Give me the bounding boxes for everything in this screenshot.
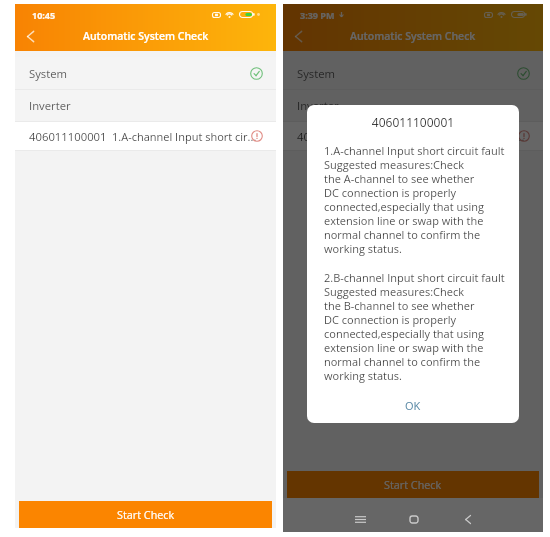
button[interactable]: Back — [283, 24, 314, 48]
staticText: Automatic System Check — [83, 29, 209, 43]
staticText: 406011100001 — [307, 114, 519, 130]
button[interactable]: 406011100001 — [15, 122, 276, 150]
staticText: 10:45 — [32, 9, 56, 21]
button[interactable]: Inverter — [283, 90, 543, 121]
staticText: 406011100001 — [297, 129, 375, 144]
button[interactable]: OK — [307, 387, 519, 423]
button[interactable]: Home — [401, 512, 427, 526]
button[interactable]: Start Check — [19, 501, 272, 528]
staticText: Start Check — [117, 507, 175, 522]
staticText: Start Check — [384, 477, 442, 492]
staticText: Inverter — [29, 98, 71, 113]
staticText: Automatic System Check — [350, 29, 476, 43]
staticText: OK — [405, 398, 421, 413]
staticText: 1.A-channel Input short circuit fault Su… — [324, 143, 505, 256]
staticText: 2.B-channel Input short circuit fault Su… — [324, 270, 505, 383]
staticText: 1.A-channel Input short cir... — [112, 129, 257, 144]
button[interactable]: Recent apps — [347, 512, 373, 526]
staticText: Inverter — [297, 98, 339, 113]
button[interactable]: System — [15, 57, 276, 89]
staticText: System — [297, 66, 336, 81]
button[interactable]: Back — [455, 512, 481, 526]
button[interactable]: System — [283, 57, 543, 89]
staticText: 3:39 PM — [300, 9, 335, 21]
staticText: 406011100001 — [29, 129, 107, 144]
staticText: System — [29, 66, 68, 81]
button[interactable]: 406011100001 — [283, 122, 543, 150]
staticText: 1.A-channel Input short cir... — [380, 129, 525, 144]
button[interactable]: Start Check — [287, 471, 539, 498]
button[interactable]: Inverter — [15, 90, 276, 121]
button[interactable]: Back — [15, 24, 46, 48]
